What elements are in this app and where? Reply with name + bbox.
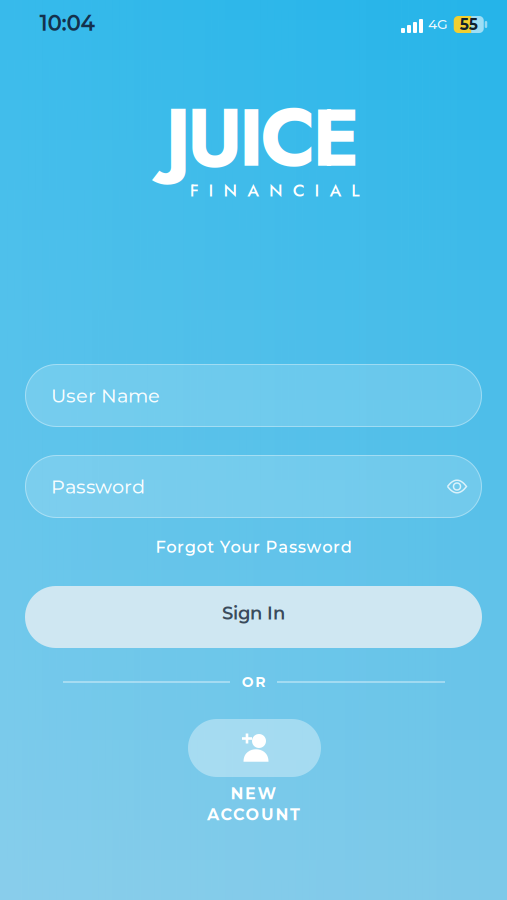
staticText: OR (242, 673, 265, 691)
staticText: 55 (460, 15, 478, 34)
staticText: ACCOUNT (207, 805, 300, 824)
staticText: JUICE (165, 80, 360, 196)
staticText: NEW (230, 784, 276, 803)
staticText: Password (51, 475, 145, 498)
button[interactable]: Forgot Your Password (155, 537, 352, 557)
staticText: User Name (51, 384, 160, 407)
staticText: Forgot Your Password (155, 537, 352, 557)
button[interactable]: Show Password (445, 474, 469, 498)
staticText: FINANCIAL (190, 178, 359, 203)
staticText: 4G (428, 16, 448, 32)
button[interactable]: Sign In (25, 586, 482, 648)
staticText: Sign In (222, 602, 285, 624)
button[interactable]: User Name (25, 364, 482, 427)
button[interactable]: Password (25, 455, 482, 518)
staticText: 10:04 (39, 10, 94, 36)
button[interactable]: NEW (0, 0, 507, 900)
